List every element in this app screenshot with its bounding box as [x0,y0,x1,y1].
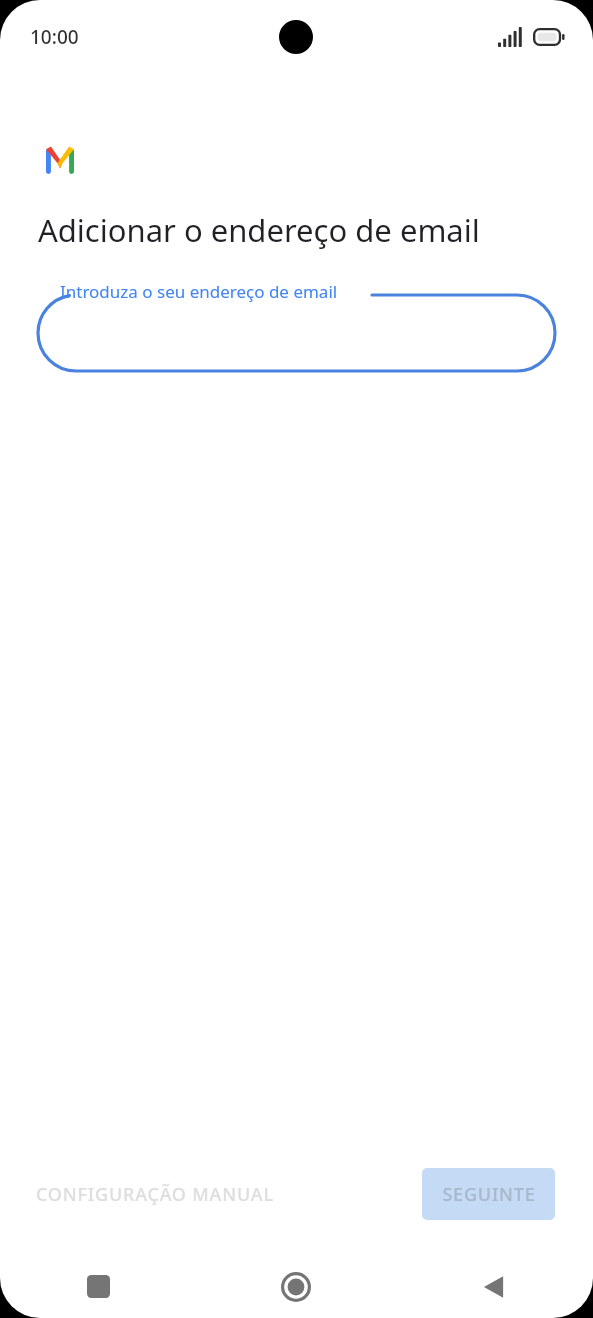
button[interactable]: SEGUINTE [422,1168,555,1220]
button[interactable]: Home [197,1255,395,1318]
button[interactable]: Introduza o seu endereço de email [38,275,555,371]
button[interactable]: Back [395,1255,593,1318]
staticText: 10:00 [30,24,79,50]
button[interactable]: Recent apps [0,1255,197,1318]
staticText: Introduza o seu endereço de email [60,280,338,303]
staticText: CONFIGURAÇÃO MANUAL [36,1182,274,1207]
staticText: Adicionar o endereço de email [38,209,480,251]
staticText: SEGUINTE [442,1182,536,1207]
button[interactable]: CONFIGURAÇÃO MANUAL [22,1170,288,1219]
